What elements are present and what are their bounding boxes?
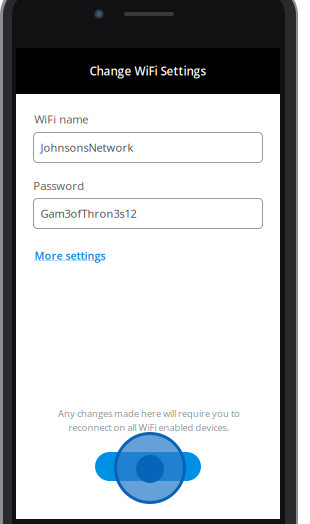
button[interactable]: More settings bbox=[34, 248, 105, 263]
button[interactable]: Change WiFi Settings bbox=[16, 48, 280, 94]
staticText: JohnsonsNetwork bbox=[40, 140, 133, 155]
staticText: Any changes made here will require you t… bbox=[58, 407, 240, 420]
staticText: Gam3ofThron3s12 bbox=[40, 206, 136, 221]
staticText: WiFi name bbox=[34, 111, 88, 127]
button[interactable]: JohnsonsNetwork bbox=[33, 132, 262, 162]
staticText: Change WiFi Settings bbox=[89, 63, 206, 79]
button[interactable]: Gam3ofThron3s12 bbox=[33, 198, 262, 228]
staticText: More settings bbox=[34, 248, 105, 263]
staticText: reconnect on all WiFi enabled devices. bbox=[69, 421, 229, 434]
staticText: Password bbox=[33, 178, 84, 193]
